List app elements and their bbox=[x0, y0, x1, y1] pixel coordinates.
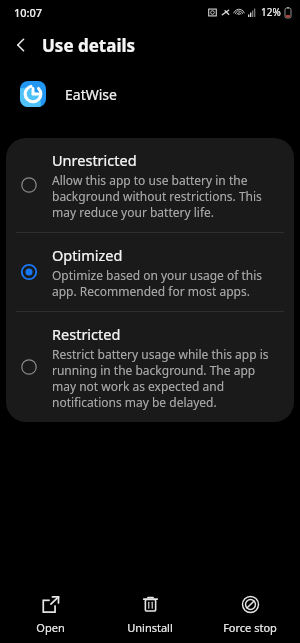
staticText: Force stop bbox=[223, 620, 277, 635]
staticText: Unrestricted bbox=[52, 150, 137, 170]
staticText: EatWise bbox=[65, 85, 117, 104]
staticText: Restricted bbox=[52, 324, 121, 344]
staticText: Optimized bbox=[52, 245, 123, 265]
staticText: Optimize based on your usage of this app… bbox=[52, 267, 278, 299]
button[interactable]: Optimized bbox=[6, 233, 294, 311]
button[interactable]: Restricted bbox=[6, 312, 294, 422]
button[interactable]: Uninstall bbox=[100, 587, 200, 643]
staticText: 12% bbox=[261, 5, 281, 19]
button[interactable]: Unrestricted bbox=[6, 138, 294, 232]
button[interactable]: Open bbox=[0, 587, 100, 643]
staticText: Use details bbox=[42, 34, 136, 57]
staticText: Allow this app to use battery in the bac… bbox=[52, 172, 278, 220]
staticText: Open bbox=[36, 620, 65, 635]
staticText: Uninstall bbox=[127, 620, 173, 635]
staticText: 10:07 bbox=[14, 5, 43, 20]
staticText: Restrict battery usage while this app is… bbox=[52, 346, 278, 410]
button[interactable]: Back bbox=[0, 24, 42, 66]
button[interactable]: EatWise bbox=[0, 72, 300, 116]
button[interactable]: Force stop bbox=[200, 587, 300, 643]
